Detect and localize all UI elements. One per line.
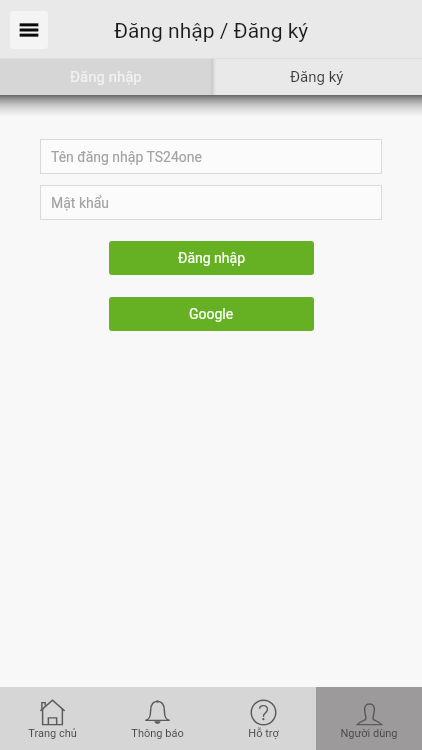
staticText: Google: [189, 306, 234, 322]
staticText: Người dùng: [340, 727, 398, 740]
staticText: Đăng nhập / Đăng ký: [114, 19, 309, 44]
button[interactable]: Mật khẩu: [40, 185, 382, 220]
staticText: Thông báo: [131, 727, 184, 740]
staticText: Đăng nhập: [178, 250, 245, 266]
button[interactable]: Google: [109, 297, 314, 331]
button[interactable]: Thông báo: [105, 687, 210, 750]
staticText: Đăng nhập: [70, 68, 142, 86]
button[interactable]: Hỗ trợ: [210, 687, 316, 750]
button[interactable]: Tên đăng nhập TS24one: [40, 139, 382, 174]
staticText: Tên đăng nhập TS24one: [51, 149, 202, 165]
button[interactable]: Menu: [10, 11, 48, 49]
button[interactable]: Người dùng: [316, 687, 422, 750]
staticText: Hỗ trợ: [248, 727, 279, 740]
staticText: Đăng ký: [290, 68, 344, 86]
staticText: Mật khẩu: [51, 195, 110, 211]
button[interactable]: Đăng nhập: [0, 59, 211, 95]
button[interactable]: Đăng ký: [211, 59, 422, 95]
staticText: Trang chủ: [28, 727, 77, 740]
button[interactable]: Trang chủ: [0, 687, 105, 750]
button[interactable]: Đăng nhập: [109, 241, 314, 275]
